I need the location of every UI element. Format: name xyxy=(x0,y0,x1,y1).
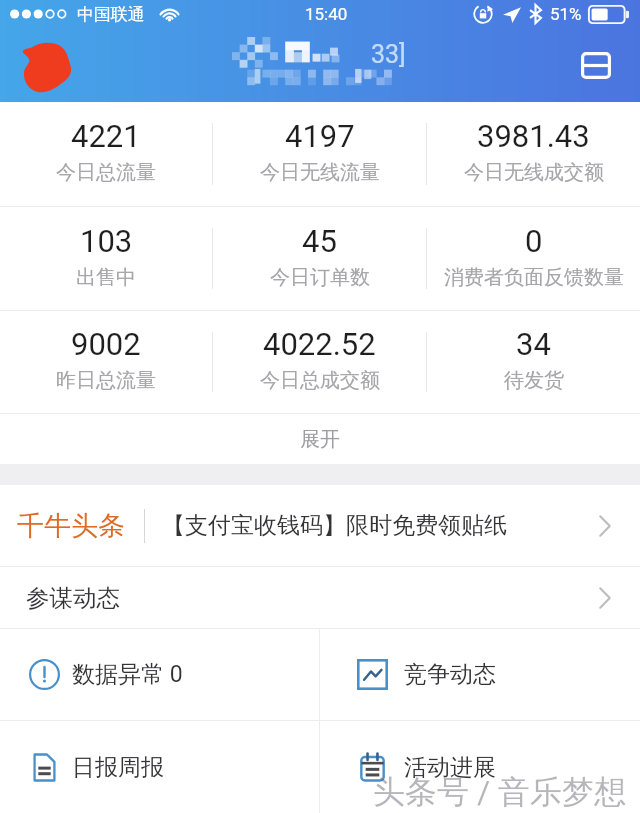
staticText: 0 xyxy=(525,223,543,259)
staticText: 今日无线流量 xyxy=(260,160,380,185)
button[interactable]: Switch view xyxy=(572,41,620,89)
button[interactable]: 4221 xyxy=(0,102,212,201)
staticText: 3981.43 xyxy=(477,118,590,154)
staticText: 头条号 / 音乐梦想 xyxy=(373,772,627,812)
staticText: 4022.52 xyxy=(263,326,376,362)
staticText: 【支付宝收钱码】限时免费领贴纸 xyxy=(162,511,507,540)
staticText: 103 xyxy=(80,223,133,259)
staticText: 9002 xyxy=(71,326,141,362)
staticText: 千牛头条 xyxy=(17,509,125,543)
staticText: 今日订单数 xyxy=(270,265,370,290)
staticText: 15:40 xyxy=(305,4,348,24)
button[interactable]: 千牛头条 xyxy=(0,485,640,566)
button[interactable]: 34 xyxy=(427,311,640,408)
staticText: 中国联通 xyxy=(77,4,145,25)
staticText: 今日总成交额 xyxy=(260,368,380,393)
staticText: 昨日总流量 xyxy=(56,368,156,393)
button[interactable]: 展开 xyxy=(0,414,640,464)
button[interactable]: 数据异常 0 xyxy=(0,629,319,720)
button[interactable]: 9002 xyxy=(0,311,212,408)
button[interactable]: 参谋动态 xyxy=(0,567,640,628)
button[interactable]: 103 xyxy=(0,207,212,305)
staticText: 活动进展 xyxy=(404,753,496,782)
staticText: 4221 xyxy=(71,118,141,154)
staticText: 4197 xyxy=(285,118,355,154)
staticText: 34 xyxy=(516,326,551,362)
button[interactable]: 活动进展 xyxy=(320,721,640,813)
button[interactable]: 3981.43 xyxy=(427,102,640,201)
staticText: 消费者负面反馈数量 xyxy=(444,265,624,290)
button[interactable]: 4197 xyxy=(213,102,426,201)
staticText: 数据异常 0 xyxy=(72,660,183,689)
staticText: 展开 xyxy=(300,427,340,452)
staticText: 参谋动态 xyxy=(26,583,120,613)
staticText: 今日总流量 xyxy=(56,160,156,185)
staticText: 日报周报 xyxy=(72,753,164,782)
staticText: 33] xyxy=(371,40,406,69)
staticText: 今日无线成交额 xyxy=(464,160,604,185)
staticText: 45 xyxy=(302,223,337,259)
staticText: 待发货 xyxy=(504,368,564,393)
staticText: 51% xyxy=(550,4,582,24)
button[interactable]: 日报周报 xyxy=(0,721,319,813)
button[interactable]: 竞争动态 xyxy=(320,629,640,720)
button[interactable]: 45 xyxy=(213,207,426,305)
staticText: 竞争动态 xyxy=(404,660,496,689)
staticText: 出售中 xyxy=(76,265,136,290)
button[interactable]: 0 xyxy=(427,207,640,305)
button[interactable]: 4022.52 xyxy=(213,311,426,408)
